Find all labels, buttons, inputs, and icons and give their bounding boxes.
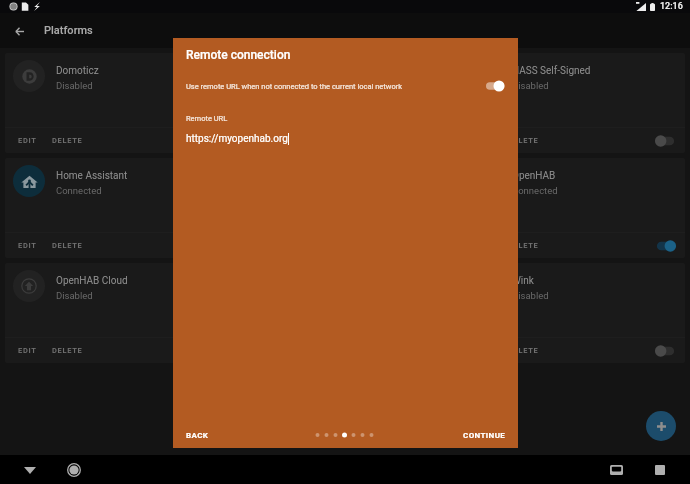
staticText: Disabled — [56, 80, 93, 91]
staticText: EDIT — [18, 136, 37, 145]
staticText: Remote connection — [186, 48, 291, 62]
staticText: Platforms — [44, 24, 93, 37]
staticText: https://myopenhab.org — [186, 133, 288, 145]
button[interactable]: DELETE — [52, 236, 83, 255]
staticText: DELETE — [52, 346, 83, 355]
button[interactable]: BACK — [186, 425, 209, 446]
button[interactable]: Disabled — [655, 344, 676, 358]
button[interactable]: Disabled — [655, 134, 676, 148]
button[interactable]: Enabled — [655, 239, 676, 253]
button[interactable]: Wink — [461, 263, 685, 363]
button[interactable]: DELETE — [52, 341, 83, 360]
staticText: DELETE — [280, 136, 311, 145]
staticText: EDIT — [246, 136, 265, 145]
button[interactable]: CONTINUE — [463, 425, 506, 446]
staticText: Disabled — [512, 80, 549, 91]
staticText: 12:16 — [660, 1, 683, 12]
staticText: EDIT — [18, 346, 37, 355]
button[interactable]: Hubitat — [233, 53, 457, 153]
staticText: HASS Self-Signed — [512, 65, 591, 77]
button[interactable]: EDIT — [18, 131, 37, 150]
button[interactable]: DELETE — [52, 131, 83, 150]
staticText: Disabled — [512, 290, 549, 301]
button[interactable]: Home — [60, 456, 88, 484]
staticText: CONTINUE — [463, 431, 506, 440]
button[interactable]: EDIT — [18, 236, 37, 255]
button[interactable]: DELETE — [508, 131, 539, 150]
staticText: Wink — [512, 275, 534, 287]
button[interactable]: Back — [16, 456, 44, 484]
staticText: Disabled — [284, 80, 321, 91]
staticText: BACK — [186, 431, 209, 440]
staticText: EDIT — [18, 241, 37, 250]
button[interactable]: Use remote URL — [486, 79, 506, 93]
button[interactable]: Back — [6, 18, 32, 44]
staticText: DELETE — [508, 136, 539, 145]
button[interactable]: DELETE — [280, 131, 311, 150]
button[interactable]: DELETE — [508, 236, 539, 255]
staticText: Use remote URL when not connected to the… — [186, 82, 478, 91]
button[interactable]: EDIT — [246, 131, 265, 150]
staticText: Domoticz — [56, 65, 99, 77]
staticText: Remote URL — [186, 114, 228, 123]
button[interactable]: DELETE — [508, 341, 539, 360]
staticText: DELETE — [52, 136, 83, 145]
staticText: DELETE — [52, 241, 83, 250]
staticText: Disabled — [56, 290, 93, 301]
button[interactable]: Domoticz — [5, 53, 229, 153]
staticText: OpenHAB Cloud — [56, 275, 128, 287]
button[interactable]: HASS Self-Signed — [461, 53, 685, 153]
button[interactable]: Home Assistant — [5, 158, 229, 258]
staticText: DELETE — [508, 241, 539, 250]
button[interactable]: OpenHAB — [461, 158, 685, 258]
staticText: Home Assistant — [56, 170, 128, 182]
button[interactable]: OpenHAB Cloud — [5, 263, 229, 363]
button[interactable]: Keyboard — [602, 456, 630, 484]
button[interactable]: Add platform — [646, 411, 676, 441]
button[interactable]: EDIT — [18, 341, 37, 360]
staticText: DELETE — [508, 346, 539, 355]
button[interactable]: Recents — [646, 456, 674, 484]
staticText: Connected — [56, 185, 102, 196]
button[interactable]: Disabled — [199, 134, 220, 148]
staticText: OpenHAB — [512, 170, 556, 182]
staticText: Connected — [512, 185, 558, 196]
